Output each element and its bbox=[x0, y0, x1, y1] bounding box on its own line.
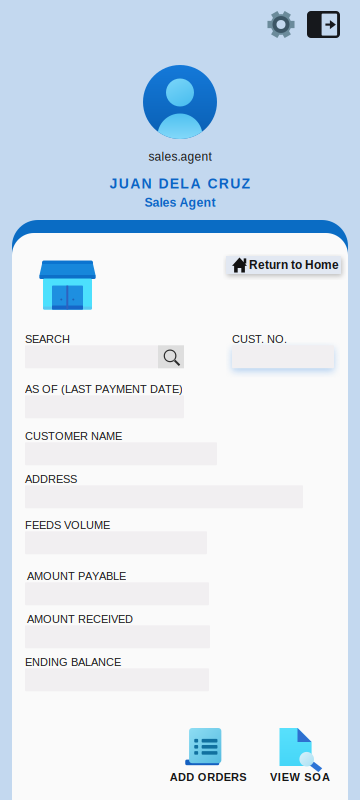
staticText: CUST. NO. bbox=[232, 333, 287, 345]
staticText: ADD ORDERS bbox=[170, 771, 246, 783]
staticText: AS OF (LAST PAYMENT DATE) bbox=[25, 383, 183, 395]
staticText: ADDRESS bbox=[25, 473, 77, 485]
button[interactable]: Return to Home bbox=[226, 256, 341, 274]
staticText: Return to Home bbox=[249, 258, 339, 272]
button[interactable]: Search bbox=[158, 345, 184, 368]
staticText: SEARCH bbox=[25, 333, 70, 345]
button[interactable]: Settings bbox=[267, 10, 295, 39]
staticText: Sales Agent bbox=[144, 195, 215, 209]
button[interactable]: VIEW SOA bbox=[254, 728, 346, 783]
staticText: JUAN DELA CRUZ bbox=[109, 176, 251, 191]
staticText: CUSTOMER NAME bbox=[25, 430, 122, 442]
staticText: sales.agent bbox=[148, 150, 211, 163]
staticText: FEEDS VOLUME bbox=[25, 519, 110, 531]
staticText: ENDING BALANCE bbox=[25, 656, 121, 668]
staticText: VIEW SOA bbox=[270, 771, 330, 783]
staticText: AMOUNT RECEIVED bbox=[25, 613, 133, 625]
staticText: AMOUNT PAYABLE bbox=[25, 570, 126, 582]
button[interactable]: Log out bbox=[307, 11, 340, 38]
button[interactable]: ADD ORDERS bbox=[162, 728, 254, 783]
